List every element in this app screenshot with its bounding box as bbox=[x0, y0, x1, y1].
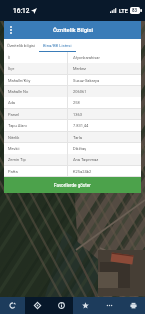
staticText: Afyonkarahisar bbox=[73, 55, 141, 60]
staticText: Tarla bbox=[73, 135, 141, 140]
button[interactable]: Bina/BB Listesi bbox=[39, 39, 76, 52]
staticText: Öznitelik bilgisi bbox=[7, 43, 36, 48]
button[interactable]: Compass bbox=[25, 297, 49, 314]
staticText: Ada bbox=[8, 100, 67, 105]
staticText: Favorilerde göster bbox=[54, 183, 91, 188]
button[interactable]: Info bbox=[49, 297, 73, 314]
button[interactable]: Print bbox=[121, 297, 145, 314]
button[interactable]: Öznitelik bilgisi bbox=[4, 39, 39, 52]
staticText: Mevkii bbox=[8, 146, 67, 151]
button[interactable]: Parsel bbox=[4, 109, 141, 120]
staticText: Tapu Alanı bbox=[8, 123, 67, 128]
staticText: İl bbox=[8, 55, 67, 60]
staticText: Bina/BB Listesi bbox=[43, 43, 72, 48]
staticText: K25a24b2 bbox=[73, 169, 141, 174]
staticText: Zemin Tip bbox=[8, 157, 67, 162]
staticText: Merkez bbox=[73, 66, 141, 71]
staticText: 16:12 bbox=[13, 7, 30, 15]
staticText: 258 bbox=[73, 100, 141, 105]
staticText: 83 bbox=[132, 8, 138, 13]
button[interactable]: İl bbox=[4, 52, 141, 63]
staticText: Mahalle No bbox=[8, 89, 67, 94]
staticText: Mahalle/Köy bbox=[8, 78, 67, 83]
staticText: 7.831,44 bbox=[73, 123, 141, 128]
button[interactable]: Mahalle/Köy bbox=[4, 75, 141, 86]
button[interactable]: Refresh bbox=[0, 297, 25, 314]
button[interactable]: Mahalle No bbox=[4, 86, 141, 97]
button[interactable]: Favorite bbox=[73, 297, 97, 314]
button[interactable]: Ada bbox=[4, 97, 141, 108]
button[interactable]: Tapu Alanı bbox=[4, 120, 141, 131]
button[interactable]: Mevkii bbox=[4, 143, 141, 154]
button[interactable]: Zemin Tip bbox=[4, 154, 141, 165]
staticText: Dikiltaş bbox=[73, 146, 141, 151]
button[interactable]: Favorilerde göster bbox=[4, 177, 141, 193]
button[interactable]: More bbox=[97, 297, 121, 314]
staticText: Nitelik bbox=[8, 135, 67, 140]
button[interactable]: Pafta bbox=[4, 166, 141, 177]
staticText: Pafta bbox=[8, 169, 67, 174]
staticText: 206061 bbox=[73, 89, 141, 94]
staticText: Öznitelik Bilgisi bbox=[53, 27, 93, 34]
staticText: 1363 bbox=[73, 112, 141, 117]
staticText: Susuz-Sakarya bbox=[73, 78, 141, 83]
staticText: Parsel bbox=[8, 112, 67, 117]
staticText: Ana Taşınmaz bbox=[73, 157, 141, 162]
staticText: LTE bbox=[119, 8, 128, 14]
button[interactable]: Nitelik bbox=[4, 132, 141, 143]
button[interactable]: İlçe bbox=[4, 63, 141, 74]
staticText: İlçe bbox=[8, 66, 67, 71]
button[interactable]: Menu bbox=[4, 21, 17, 39]
